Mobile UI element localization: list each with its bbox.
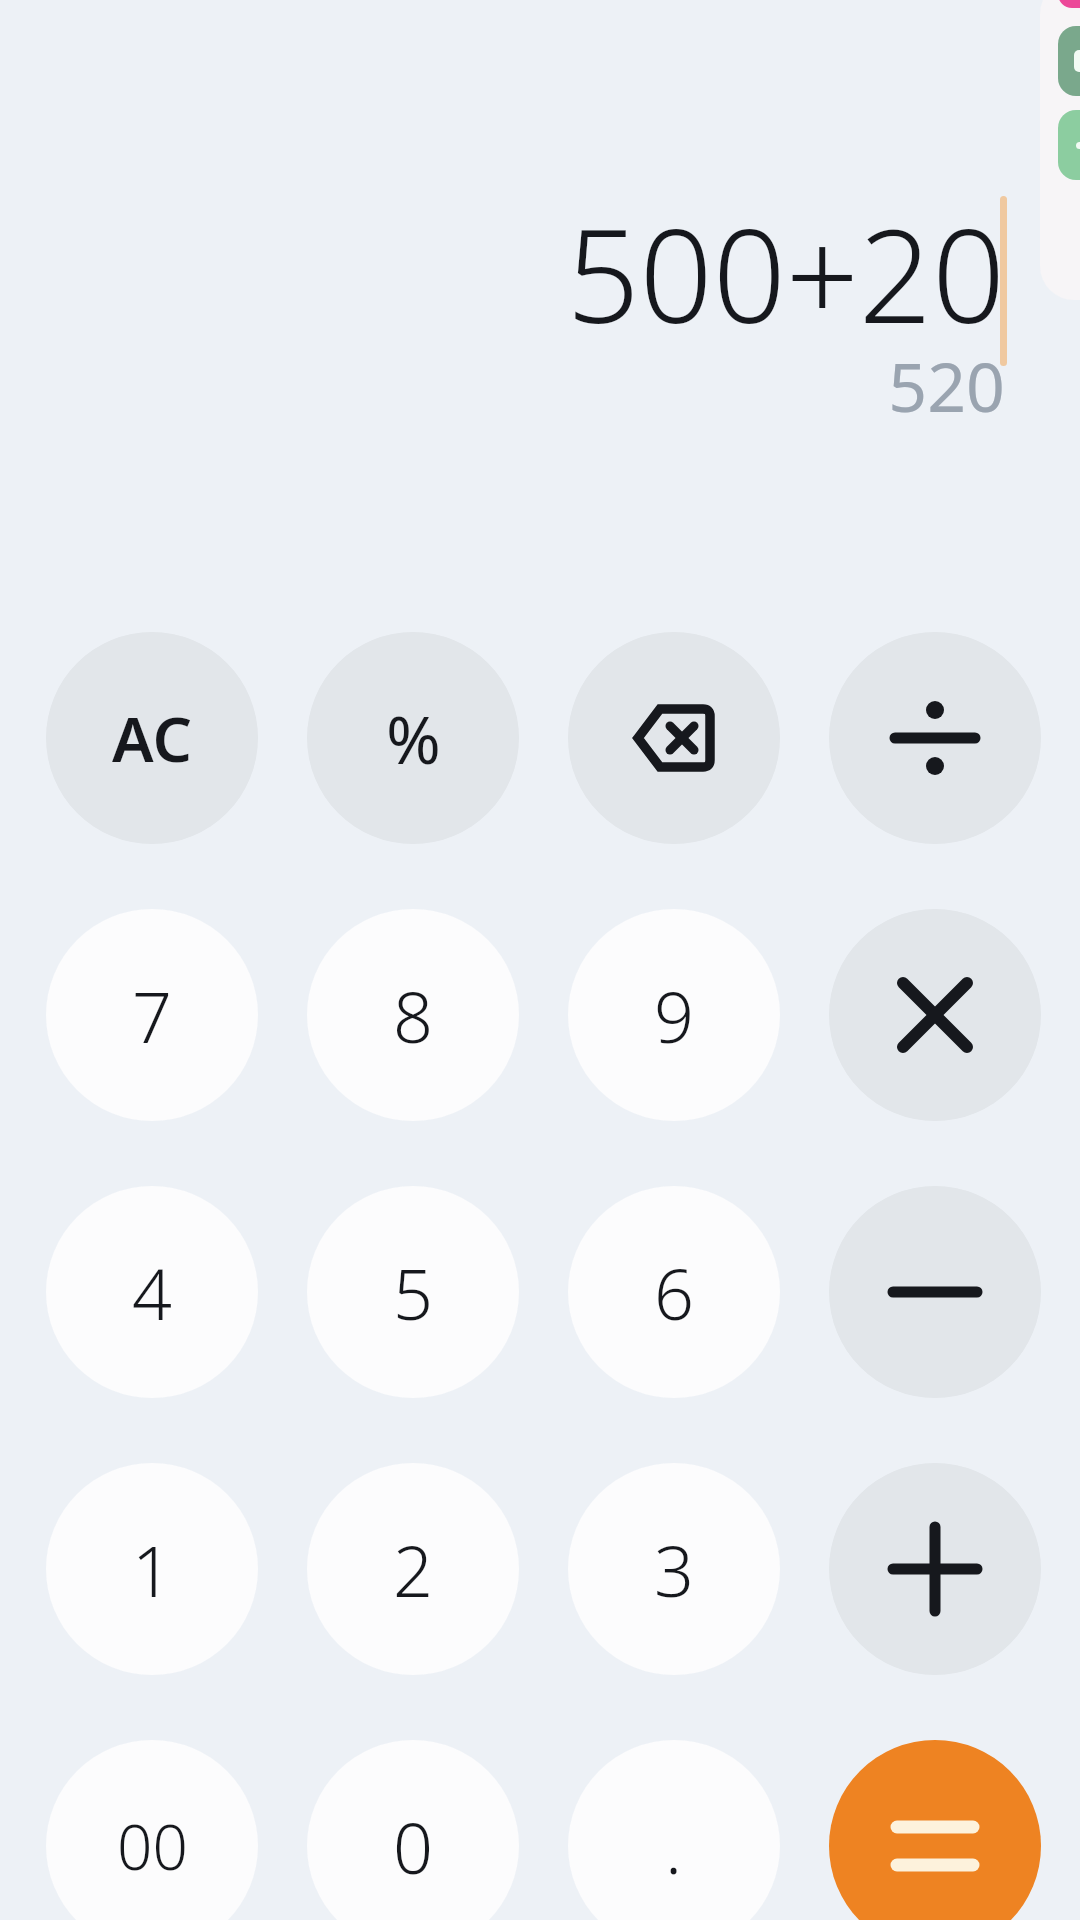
button[interactable]: 0 [307, 1740, 519, 1920]
button[interactable]: 2 [307, 1463, 519, 1675]
button[interactable]: Backspace [568, 632, 780, 844]
button[interactable]: Plus [829, 1463, 1041, 1675]
staticText: 5 [393, 1245, 433, 1340]
button[interactable]: AC [46, 632, 258, 844]
button[interactable]: 8 [307, 909, 519, 1121]
button[interactable]: 3 [568, 1463, 780, 1675]
button[interactable]: More options [1058, 110, 1080, 180]
button[interactable]: 9 [568, 909, 780, 1121]
staticText: 500+20 [60, 186, 1005, 356]
staticText: 7 [132, 968, 172, 1063]
staticText: 4 [132, 1245, 172, 1340]
staticText: 00 [117, 1804, 188, 1888]
staticText: 6 [654, 1245, 694, 1340]
button[interactable]: . [568, 1740, 780, 1920]
button[interactable]: Multiply [829, 909, 1041, 1121]
staticText: 1 [132, 1522, 172, 1617]
staticText: 2 [393, 1522, 433, 1617]
staticText: 8 [393, 968, 433, 1063]
button[interactable]: Divide [829, 632, 1041, 844]
button[interactable]: Equals [829, 1740, 1041, 1920]
button[interactable]: Screenshot [1058, 26, 1080, 96]
button[interactable]: 1 [46, 1463, 258, 1675]
button[interactable]: 5 [307, 1186, 519, 1398]
staticText: 0 [393, 1799, 433, 1894]
staticText: 9 [654, 968, 694, 1063]
button[interactable]: 7 [46, 909, 258, 1121]
staticText: AC [112, 696, 192, 780]
button[interactable]: % [307, 632, 519, 844]
button[interactable]: 4 [46, 1186, 258, 1398]
button[interactable]: 6 [568, 1186, 780, 1398]
button[interactable]: 00 [46, 1740, 258, 1920]
staticText: 3 [654, 1522, 694, 1617]
button[interactable]: Shortcut [1058, 0, 1080, 8]
staticText: . [665, 1799, 683, 1894]
button[interactable]: Minus [829, 1186, 1041, 1398]
staticText: % [386, 693, 441, 783]
staticText: 520 [60, 339, 1005, 432]
